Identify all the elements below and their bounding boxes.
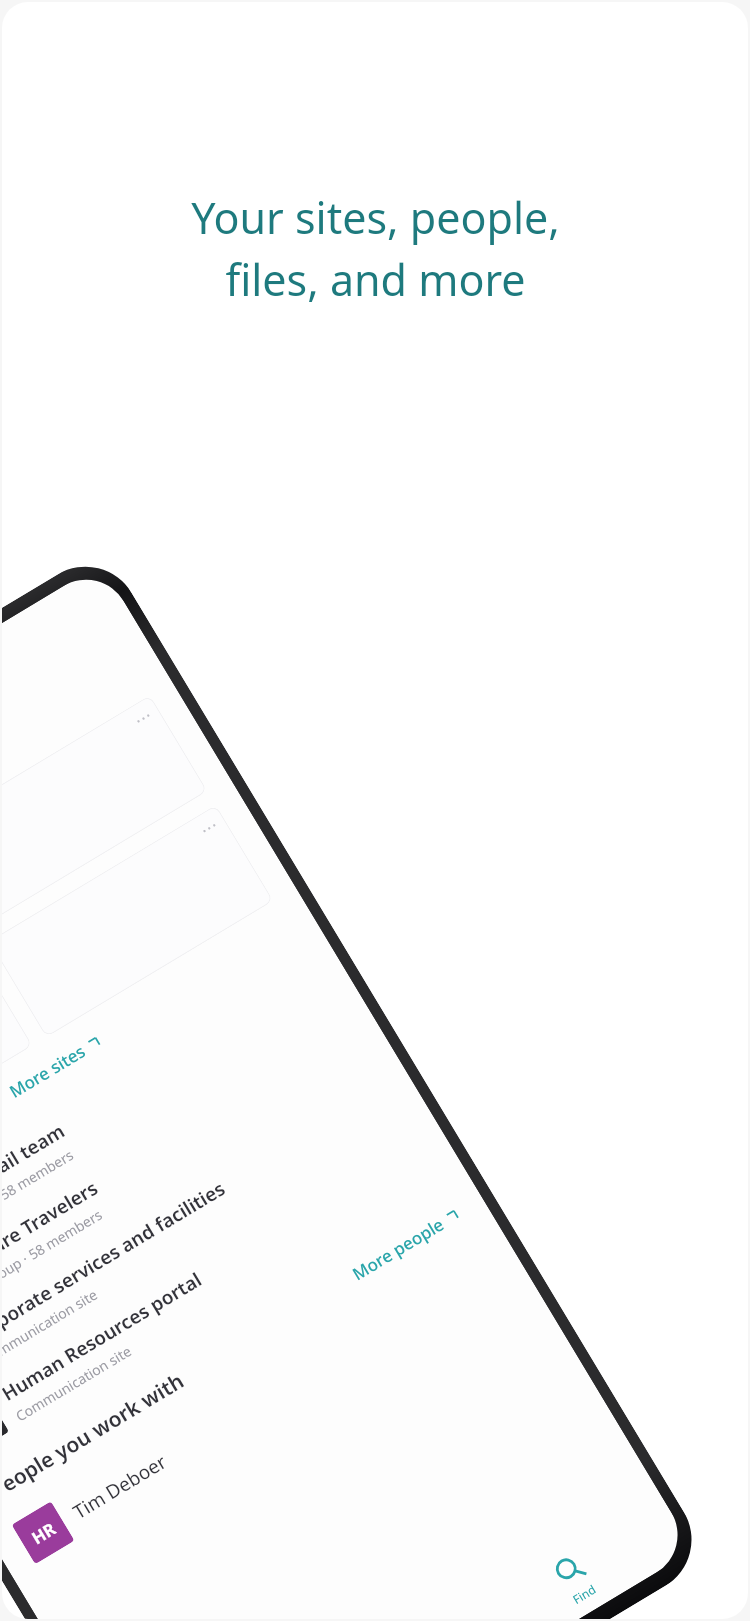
staticText: Communication site: [2, 1285, 101, 1369]
staticText: Contoso Retail team: [2, 1118, 70, 1237]
staticText: Public group · 58 members: [2, 1205, 105, 1312]
button[interactable]: Corporate services and facilities: [2, 1070, 409, 1407]
staticText: Your sites, people,: [191, 188, 560, 247]
button[interactable]: • • •: [2, 949, 33, 1182]
staticText: Communication site: [12, 1341, 135, 1425]
staticText: People you work with: [2, 1366, 189, 1505]
staticText: More people: [348, 1212, 448, 1285]
staticText: HR: [27, 1517, 60, 1549]
button[interactable]: More sites: [2, 1024, 111, 1109]
staticText: Tim Deboer: [68, 1448, 171, 1525]
staticText: files, and more: [225, 250, 526, 309]
staticText: Human Resources portal: [2, 1266, 207, 1406]
button[interactable]: Contoso Retail team: [2, 956, 341, 1294]
staticText: • • •: [134, 709, 153, 727]
button[interactable]: • • •: [2, 805, 273, 1037]
button[interactable]: HR: [7, 1237, 507, 1571]
button[interactable]: Find: [477, 1500, 672, 1619]
button[interactable]: • • •: [2, 695, 208, 928]
staticText: More sites: [5, 1039, 90, 1103]
staticText: Adventure Travelers: [2, 1175, 103, 1293]
staticText: • • •: [200, 818, 219, 836]
staticText: Private group · 58 members: [2, 1145, 77, 1256]
button[interactable]: Human Resources portal: [2, 1126, 443, 1464]
staticText: Find: [569, 1580, 599, 1607]
button[interactable]: Adventure Travelers: [2, 1013, 375, 1351]
staticText: Corporate services and facilities: [2, 1175, 230, 1350]
button[interactable]: More people: [342, 1198, 468, 1291]
